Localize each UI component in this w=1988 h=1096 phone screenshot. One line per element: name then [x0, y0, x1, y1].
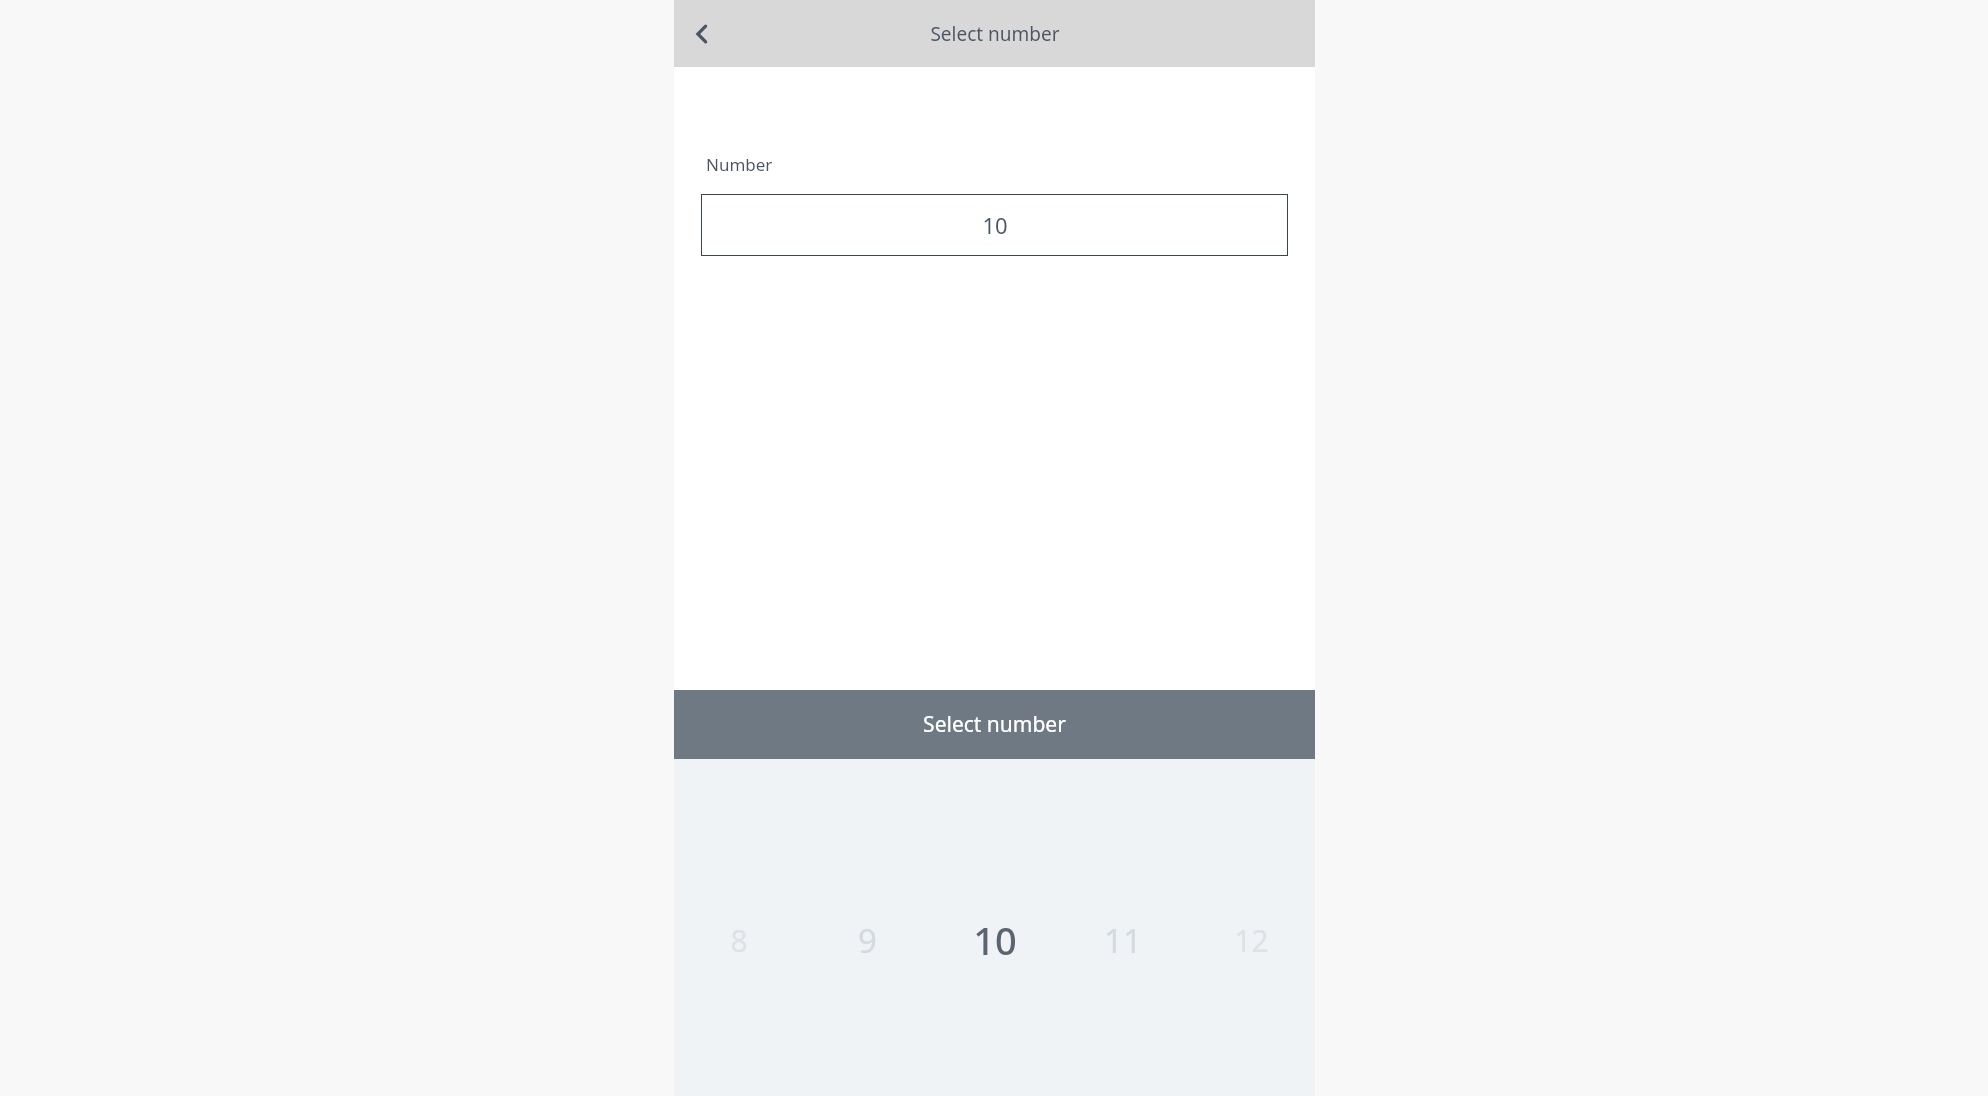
staticText: Select number [930, 21, 1060, 47]
button[interactable]: 10 [701, 194, 1288, 256]
staticText: Number [706, 153, 773, 176]
staticText: Select number [923, 710, 1066, 739]
button[interactable]: Back [674, 6, 730, 62]
staticText: 9 [858, 918, 877, 963]
staticText: 10 [982, 210, 1008, 240]
button[interactable]: 9 [803, 905, 931, 975]
button[interactable]: 11 [1059, 905, 1187, 975]
staticText: 10 [973, 914, 1017, 966]
staticText: 12 [1234, 920, 1269, 961]
staticText: 11 [1104, 918, 1142, 963]
button[interactable]: 10 [931, 905, 1059, 975]
staticText: 8 [730, 920, 748, 961]
